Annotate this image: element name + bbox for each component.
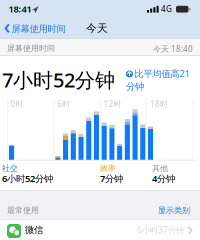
staticText: 屏幕使用时间 (7, 43, 55, 53)
staticText: 18时 (150, 98, 168, 109)
staticText: 6小时52分钟 (2, 172, 53, 185)
staticText: 分钟 (126, 81, 144, 92)
staticText: 比平均值高21 (134, 67, 189, 80)
staticText: 微信 (25, 224, 43, 236)
staticText: 12时 (104, 98, 122, 109)
staticText: 显示类别 (158, 205, 190, 215)
staticText: 18:41 (8, 3, 31, 15)
staticText: 最常使用 (7, 205, 39, 215)
staticText: 7小时52分钟 (2, 66, 115, 93)
staticText: 4G (161, 4, 172, 14)
staticText: 0时 (10, 98, 23, 109)
staticText: 屏幕使用时间 (11, 23, 65, 35)
staticText: 效率 (100, 163, 116, 173)
staticText: 今天 (86, 22, 108, 35)
staticText: 7分钟 (100, 172, 123, 185)
staticText: 6时 (57, 98, 70, 109)
staticText: 社交 (2, 163, 18, 173)
staticText: 6小时37分钟 (137, 224, 184, 235)
staticText: 4分钟 (152, 172, 175, 185)
staticText: 今天 18:40 (153, 43, 193, 54)
staticText: 其他 (152, 163, 168, 173)
